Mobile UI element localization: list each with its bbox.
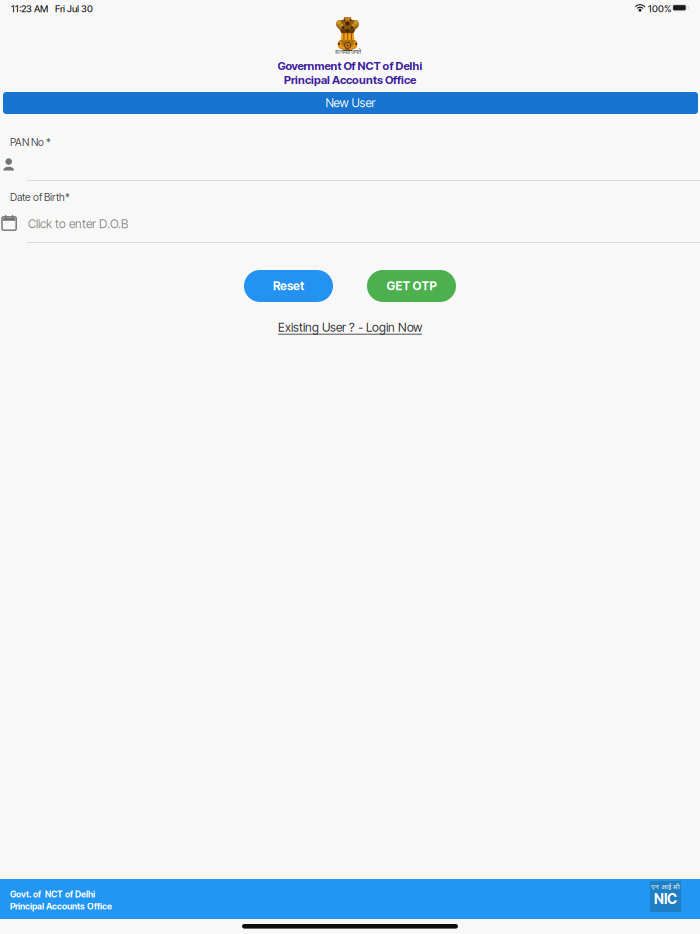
staticText: Click to enter D.O.B xyxy=(28,216,128,231)
staticText: एन आई सी xyxy=(651,883,680,892)
button[interactable]: New User xyxy=(3,92,698,114)
staticText: 11:23 AM xyxy=(11,3,48,15)
staticText: Principal Accounts Office xyxy=(284,73,416,87)
staticText: Govt. of NCT of Delhi xyxy=(10,889,95,900)
button[interactable]: Reset xyxy=(244,270,333,302)
button[interactable]: Existing User ? - Login Now xyxy=(0,320,700,335)
staticText: New User xyxy=(325,96,375,110)
staticText: Principal Accounts Office xyxy=(10,901,112,912)
staticText: PAN No * xyxy=(10,136,51,149)
staticText: 100% xyxy=(648,3,672,15)
button[interactable]: PAN No xyxy=(2,158,699,181)
staticText: Government Of NCT of Delhi xyxy=(277,59,422,73)
button[interactable]: GET OTP xyxy=(367,270,456,302)
staticText: Date of Birth* xyxy=(10,191,70,204)
staticText: Existing User ? - Login Now xyxy=(278,320,422,335)
staticText: Reset xyxy=(273,279,304,293)
staticText: Fri Jul 30 xyxy=(55,3,93,15)
staticText: NIC xyxy=(654,890,677,907)
staticText: सत्यमेव जयते xyxy=(335,49,361,56)
button[interactable]: Click to enter D.O.B xyxy=(2,215,700,243)
staticText: GET OTP xyxy=(386,279,436,293)
